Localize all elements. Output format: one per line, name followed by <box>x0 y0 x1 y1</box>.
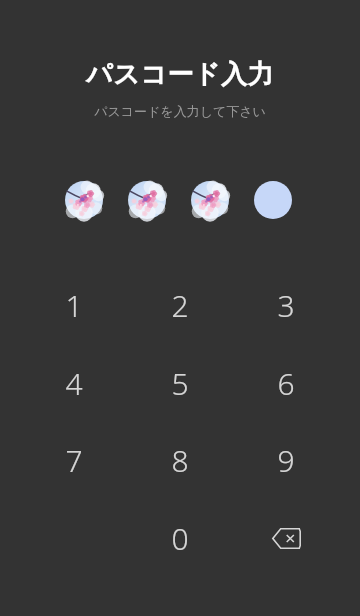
button[interactable]: Delete <box>238 502 334 574</box>
staticText: パスコードを入力して下さい <box>0 103 360 119</box>
button[interactable]: 4 <box>26 347 122 419</box>
staticText: 8 <box>171 440 189 481</box>
staticText: 2 <box>171 285 189 326</box>
button[interactable]: 6 <box>238 347 334 419</box>
staticText: 7 <box>65 440 83 481</box>
staticText: 4 <box>65 363 83 404</box>
staticText: 3 <box>277 285 295 326</box>
staticText: 0 <box>171 518 189 559</box>
button[interactable]: 2 <box>132 269 228 341</box>
staticText: 1 <box>65 285 83 326</box>
button[interactable]: 1 <box>26 269 122 341</box>
button[interactable]: 3 <box>238 269 334 341</box>
staticText: 5 <box>171 363 189 404</box>
staticText: 6 <box>277 363 295 404</box>
button[interactable]: 7 <box>26 424 122 496</box>
button[interactable]: 5 <box>132 347 228 419</box>
button[interactable]: 8 <box>132 424 228 496</box>
button[interactable]: 9 <box>238 424 334 496</box>
button[interactable]: 0 <box>132 502 228 574</box>
staticText: パスコード入力 <box>0 58 360 91</box>
staticText: 9 <box>277 440 295 481</box>
